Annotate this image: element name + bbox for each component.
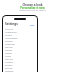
staticText: Notifications bbox=[5, 37, 18, 40]
staticText: Devices bbox=[5, 64, 13, 67]
button[interactable]: Support bbox=[3, 61, 37, 64]
button[interactable]: Notifications bbox=[3, 37, 37, 40]
button[interactable]: Backup bbox=[3, 67, 37, 70]
button[interactable]: Appearance bbox=[3, 31, 37, 34]
staticText: Privacy bbox=[5, 34, 12, 37]
staticText: About bbox=[5, 55, 11, 58]
button[interactable]: Edit bbox=[30, 23, 35, 26]
staticText: Account bbox=[5, 28, 13, 31]
staticText: Make it yours in one tap, switch it bbox=[19, 9, 46, 11]
staticText: Sounds bbox=[5, 49, 13, 52]
staticText: Language bbox=[5, 43, 15, 46]
staticText: Choose a look bbox=[22, 3, 43, 7]
staticText: Sign out bbox=[5, 58, 14, 61]
staticText: Settings bbox=[5, 22, 18, 26]
staticText: Edit bbox=[30, 23, 35, 26]
staticText: Appearance bbox=[5, 31, 17, 34]
staticText: Backup bbox=[5, 67, 13, 70]
button[interactable]: Sign out bbox=[3, 58, 37, 61]
button[interactable]: Privacy bbox=[3, 34, 37, 37]
button[interactable]: Devices bbox=[3, 64, 37, 67]
staticText: Storage bbox=[5, 40, 13, 43]
button[interactable]: Sounds bbox=[3, 49, 37, 52]
button[interactable]: Storage bbox=[3, 40, 37, 43]
button[interactable]: Display bbox=[3, 52, 37, 55]
button[interactable]: Security bbox=[3, 46, 37, 49]
staticText: Display bbox=[5, 52, 13, 55]
button[interactable]: Language bbox=[3, 43, 37, 46]
button[interactable]: Account bbox=[3, 28, 37, 31]
staticText: Security bbox=[5, 46, 13, 49]
staticText: Network bbox=[5, 70, 14, 72]
button[interactable]: Network bbox=[3, 70, 37, 72]
staticText: Support bbox=[5, 61, 13, 64]
button[interactable]: About bbox=[3, 55, 37, 58]
staticText: Personalise it now bbox=[20, 6, 45, 10]
